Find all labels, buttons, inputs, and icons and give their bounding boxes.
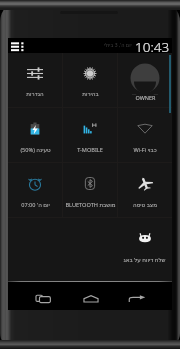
button[interactable]: בהירות bbox=[63, 53, 117, 107]
staticText: מצב טיסה bbox=[133, 201, 157, 209]
button[interactable]: T-MOBILE bbox=[63, 108, 117, 162]
button[interactable]: שלח דיווח על באג bbox=[117, 218, 172, 272]
button[interactable]: Wi-Fi כבוי bbox=[118, 108, 172, 162]
button[interactable]: Recent apps bbox=[28, 285, 58, 313]
button[interactable]: Notifications bbox=[10, 38, 25, 53]
staticText: בהירות bbox=[82, 91, 99, 98]
button[interactable]: Back bbox=[119, 285, 155, 313]
button[interactable]: Home bbox=[73, 285, 109, 313]
staticText: T-MOBILE bbox=[77, 146, 103, 154]
button[interactable]: מצב טיסה bbox=[118, 163, 172, 217]
button[interactable]: יום ה' 07:00 bbox=[8, 163, 62, 217]
staticText: שלח דיווח על באג bbox=[123, 256, 166, 264]
staticText: Wi-Fi כבוי bbox=[133, 146, 157, 154]
staticText: הגדרות bbox=[26, 91, 44, 98]
button[interactable]: OWNER bbox=[118, 53, 172, 107]
button[interactable]: BLUETOOTH מושבת bbox=[63, 163, 117, 217]
button[interactable]: הגדרות bbox=[8, 53, 62, 107]
button[interactable]: טעינה (50%) bbox=[8, 108, 62, 162]
staticText: טעינה (50%) bbox=[20, 146, 51, 154]
staticText: יום ה', 3 ביולי bbox=[104, 42, 132, 49]
staticText: BLUETOOTH מושבת bbox=[65, 201, 116, 209]
staticText: 10:43 bbox=[135, 38, 170, 53]
staticText: OWNER bbox=[135, 94, 156, 101]
staticText: יום ה' 07:00 bbox=[21, 201, 50, 209]
